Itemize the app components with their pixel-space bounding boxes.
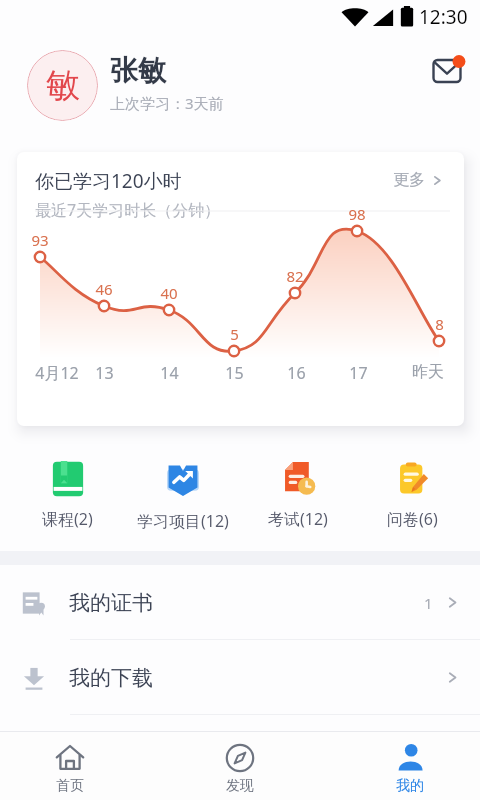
button[interactable]: 发现: [200, 731, 280, 800]
staticText: 1: [424, 593, 433, 613]
staticText: 12:30: [419, 4, 468, 30]
staticText: 上次学习：3天前: [110, 93, 224, 113]
staticText: 16: [287, 362, 306, 384]
staticText: 更多: [393, 170, 425, 190]
staticText: 98: [348, 204, 366, 224]
staticText: 学习项目(12): [137, 510, 229, 532]
staticText: 昨天: [412, 362, 444, 382]
button[interactable]: Messages: [424, 48, 470, 94]
button[interactable]: 课程(2): [10, 455, 125, 530]
staticText: 最近7天学习时长（分钟）: [35, 199, 221, 221]
staticText: 93: [31, 230, 49, 250]
staticText: 40: [160, 283, 178, 303]
button[interactable]: 首页: [30, 731, 110, 800]
staticText: 考试(12): [268, 508, 328, 530]
staticText: 我的下载: [69, 665, 153, 691]
button[interactable]: 学习项目(12): [125, 455, 240, 532]
staticText: 17: [349, 362, 368, 384]
staticText: 课程(2): [42, 508, 93, 530]
staticText: 张敏: [110, 53, 166, 88]
button[interactable]: 更多: [393, 170, 444, 190]
staticText: 82: [286, 266, 304, 286]
staticText: 4月12: [35, 362, 79, 384]
staticText: 5: [230, 324, 239, 344]
staticText: 首页: [56, 777, 84, 795]
staticText: 敏: [46, 64, 80, 107]
button[interactable]: 我的证书: [0, 565, 480, 640]
staticText: 46: [95, 279, 113, 299]
staticText: 14: [160, 362, 179, 384]
staticText: 13: [95, 362, 114, 384]
staticText: 问卷(6): [387, 508, 438, 530]
button[interactable]: 考试(12): [240, 455, 355, 530]
button[interactable]: 问卷(6): [355, 455, 470, 530]
staticText: 8: [435, 314, 444, 334]
button[interactable]: 我的: [370, 731, 450, 800]
staticText: 你已学习120小时: [35, 168, 182, 194]
staticText: 15: [225, 362, 244, 384]
staticText: 发现: [226, 777, 254, 795]
button[interactable]: 我的下载: [0, 640, 480, 715]
staticText: 我的: [396, 777, 424, 795]
staticText: 我的证书: [69, 590, 153, 616]
